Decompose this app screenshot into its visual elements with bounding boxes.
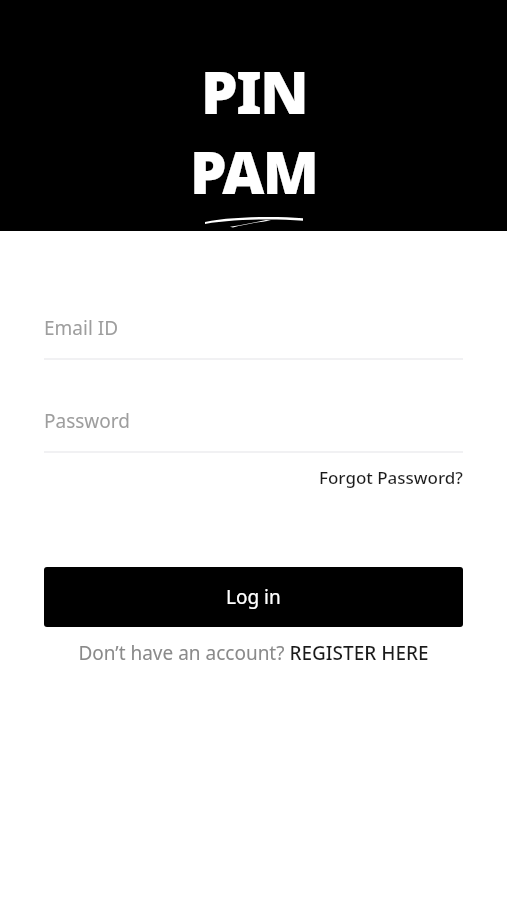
staticText: PIN <box>201 52 308 131</box>
other: PIN PAM logo <box>190 52 318 228</box>
staticText: Forgot Password? <box>319 466 463 489</box>
button[interactable]: Don’t have an account? REGISTER HERE <box>44 640 463 666</box>
button[interactable]: Log in <box>44 567 463 627</box>
staticText: Don’t have an account? REGISTER HERE <box>78 640 429 666</box>
staticText: PAM <box>190 132 318 211</box>
button[interactable]: Forgot Password? <box>319 464 463 491</box>
staticText: Email ID <box>44 315 119 341</box>
staticText: Password <box>44 408 130 434</box>
button[interactable]: Email ID <box>44 315 463 360</box>
staticText: Log in <box>226 584 281 610</box>
button[interactable]: Password <box>44 408 463 453</box>
